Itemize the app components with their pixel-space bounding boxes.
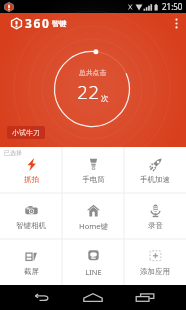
staticText: 已选择	[4, 149, 22, 157]
button[interactable]: Back	[24, 285, 58, 310]
staticText: 次	[101, 94, 109, 103]
button[interactable]: 抓拍	[0, 147, 62, 193]
staticText: 小试牛刀	[12, 128, 40, 137]
staticText: 手电筒	[82, 175, 105, 184]
button[interactable]: Recent apps	[128, 285, 162, 310]
staticText: 录音	[148, 221, 163, 230]
staticText: 智键	[52, 19, 66, 28]
staticText: 抓拍	[24, 175, 39, 184]
staticText: 22	[77, 79, 100, 105]
button[interactable]: 智键相机	[0, 193, 62, 239]
staticText: 总共点击	[79, 69, 107, 77]
staticText: LINE	[85, 267, 102, 277]
staticText: 360	[25, 15, 51, 31]
staticText: Home键	[79, 221, 108, 231]
button[interactable]: 截屏	[0, 239, 62, 285]
button[interactable]: 手机加速	[124, 147, 186, 193]
button[interactable]: 添加应用	[124, 239, 186, 285]
button[interactable]: Home键	[62, 193, 124, 239]
button[interactable]: 录音	[124, 193, 186, 239]
staticText: 截屏	[24, 267, 39, 276]
button[interactable]: LINE	[62, 239, 124, 285]
staticText: 手机加速	[140, 175, 170, 184]
staticText: 添加应用	[140, 267, 170, 276]
button[interactable]: 手电筒	[62, 147, 124, 193]
button[interactable]: 小试牛刀	[7, 126, 45, 139]
staticText: 21:50	[162, 1, 183, 12]
button[interactable]: 360	[11, 15, 66, 31]
button[interactable]: Home	[76, 285, 110, 310]
staticText: 智键相机	[16, 221, 46, 230]
button[interactable]: More options	[166, 13, 186, 33]
